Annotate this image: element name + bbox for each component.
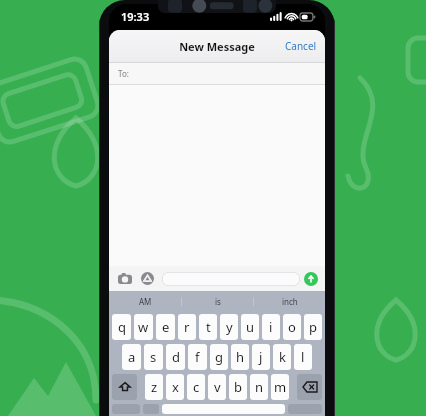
staticText: e [162, 318, 170, 336]
button[interactable]: p [304, 314, 322, 340]
staticText: y [226, 318, 233, 336]
button[interactable]: k [273, 344, 291, 370]
button[interactable]: j [252, 344, 270, 370]
button[interactable]: h [231, 344, 249, 370]
button[interactable]: b [229, 374, 247, 400]
staticText: m [274, 378, 287, 396]
button[interactable]: Backspace [297, 374, 322, 400]
button[interactable]: i [262, 314, 280, 340]
staticText: z [151, 378, 158, 396]
button[interactable]: a [122, 344, 141, 370]
staticText: w [138, 318, 149, 336]
button[interactable]: z [145, 374, 163, 400]
button[interactable]: f [188, 344, 207, 370]
button[interactable]: Space [162, 404, 285, 414]
button[interactable]: Apps [139, 270, 156, 287]
staticText: h [236, 348, 245, 366]
button[interactable]: o [283, 314, 301, 340]
staticText: f [195, 348, 200, 366]
button[interactable]: is [182, 291, 253, 312]
staticText: u [246, 318, 255, 336]
button[interactable]: q [112, 314, 131, 340]
button[interactable]: Camera [116, 270, 133, 287]
staticText: d [172, 348, 180, 366]
staticText: p [309, 318, 317, 336]
button[interactable]: w [134, 314, 153, 340]
button[interactable]: m [271, 374, 289, 400]
button[interactable]: n [250, 374, 268, 400]
staticText: k [279, 348, 286, 366]
staticText: o [288, 318, 296, 336]
staticText: x [172, 378, 179, 396]
button[interactable]: t [199, 314, 217, 340]
button[interactable] [162, 272, 300, 286]
button[interactable]: Cancel [277, 33, 325, 59]
staticText: AM [139, 296, 152, 307]
staticText: l [301, 348, 305, 366]
button[interactable]: r [178, 314, 196, 340]
staticText: To: [118, 68, 129, 79]
button[interactable]: inch [254, 291, 325, 312]
staticText: i [269, 318, 273, 336]
button[interactable]: y [220, 314, 238, 340]
staticText: Cancel [285, 39, 317, 53]
staticText: j [259, 348, 263, 366]
staticText: r [184, 318, 190, 336]
button[interactable]: l [294, 344, 312, 370]
staticText: c [193, 378, 200, 396]
button[interactable]: Shift [112, 374, 137, 400]
button[interactable]: c [187, 374, 205, 400]
button[interactable]: g [210, 344, 228, 370]
button[interactable]: u [241, 314, 259, 340]
staticText: is [215, 296, 221, 307]
button[interactable]: s [144, 344, 163, 370]
staticText: n [255, 378, 264, 396]
button[interactable]: e [156, 314, 175, 340]
staticText: v [214, 378, 221, 396]
staticText: t [206, 318, 211, 336]
button[interactable]: To: [109, 63, 325, 84]
staticText: 19:33 [121, 9, 150, 24]
staticText: q [118, 318, 126, 336]
staticText: inch [282, 296, 298, 307]
button[interactable]: x [166, 374, 184, 400]
staticText: g [215, 348, 223, 366]
button[interactable]: d [166, 344, 185, 370]
button[interactable]: Emoji [143, 404, 159, 414]
staticText: a [128, 348, 136, 366]
button[interactable]: v [208, 374, 226, 400]
button[interactable]: Send [304, 272, 318, 286]
button[interactable]: AM [109, 291, 181, 312]
staticText: s [150, 348, 157, 366]
staticText: New Message [179, 39, 255, 54]
staticText: b [234, 378, 242, 396]
